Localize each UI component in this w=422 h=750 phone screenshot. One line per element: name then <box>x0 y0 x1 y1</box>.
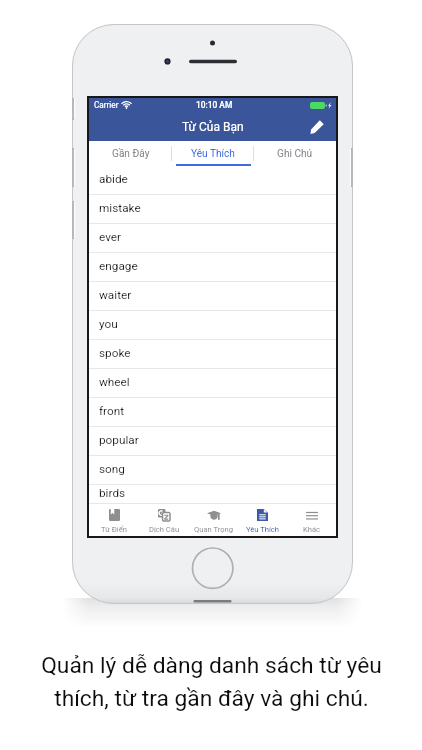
button[interactable]: Quan Trọng <box>189 504 238 536</box>
staticText: spoke <box>99 346 131 360</box>
button[interactable]: Yêu Thích <box>238 504 287 536</box>
staticText: 10:10 AM <box>196 100 233 110</box>
button[interactable]: Gần Đây <box>89 141 172 166</box>
staticText: Dịch Câu <box>149 525 180 534</box>
staticText: Quản lý dễ dàng danh sách từ yêu thích, … <box>41 652 382 712</box>
button[interactable]: you <box>89 311 336 340</box>
button[interactable]: front <box>89 398 336 427</box>
button[interactable]: Edit <box>308 118 326 136</box>
staticText: Gần Đây <box>112 148 150 160</box>
staticText: engage <box>99 259 138 273</box>
staticText: front <box>99 404 125 418</box>
staticText: Yêu Thích <box>246 525 280 534</box>
staticText: Yêu Thích <box>191 148 235 160</box>
staticText: birds <box>99 486 126 500</box>
button[interactable]: song <box>89 456 336 485</box>
button[interactable]: Khác <box>287 504 336 536</box>
staticText: you <box>99 317 118 331</box>
button[interactable]: Từ Điển <box>89 504 139 536</box>
staticText: ever <box>99 230 122 244</box>
button[interactable]: engage <box>89 253 336 282</box>
button[interactable]: spoke <box>89 340 336 369</box>
staticText: waiter <box>99 288 132 302</box>
staticText: Từ Của Bạn <box>182 120 244 134</box>
button[interactable]: birds <box>89 485 336 504</box>
staticText: Khác <box>303 525 321 534</box>
staticText: Quan Trọng <box>194 525 234 534</box>
button[interactable]: wheel <box>89 369 336 398</box>
button[interactable]: Ghi Chú <box>254 141 336 166</box>
button[interactable]: ever <box>89 224 336 253</box>
button[interactable]: Dịch Câu <box>139 504 189 536</box>
staticText: Từ Điển <box>101 525 127 534</box>
staticText: abide <box>99 172 128 186</box>
button[interactable]: abide <box>89 166 336 195</box>
staticText: Carrier <box>94 100 119 110</box>
button[interactable]: waiter <box>89 282 336 311</box>
staticText: mistake <box>99 201 141 215</box>
button[interactable]: popular <box>89 427 336 456</box>
staticText: popular <box>99 433 139 447</box>
staticText: Ghi Chú <box>277 148 313 160</box>
button[interactable]: mistake <box>89 195 336 224</box>
staticText: wheel <box>99 375 130 389</box>
staticText: song <box>99 462 125 476</box>
button[interactable]: Yêu Thích <box>172 141 254 166</box>
